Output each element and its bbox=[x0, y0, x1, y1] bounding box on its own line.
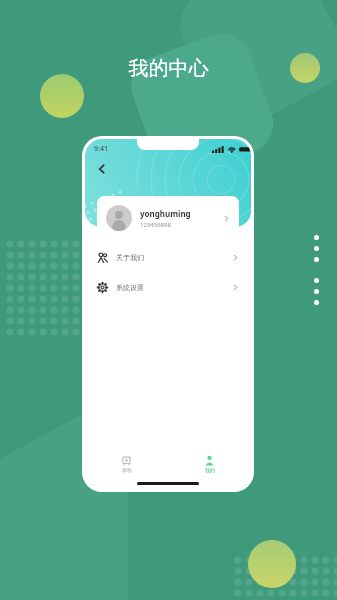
button[interactable]: 课程 bbox=[85, 453, 168, 475]
staticText: 我的中心 bbox=[0, 56, 337, 81]
button[interactable]: Back bbox=[93, 160, 111, 178]
staticText: 课程 bbox=[122, 467, 132, 473]
staticText: 我的 bbox=[205, 467, 215, 473]
button[interactable]: 关于我们 bbox=[85, 249, 251, 266]
button[interactable]: 我的 bbox=[168, 453, 251, 475]
button[interactable]: 系统设置 bbox=[85, 279, 251, 296]
staticText: 关于我们 bbox=[116, 253, 144, 262]
staticText: 9:41 bbox=[94, 144, 108, 154]
staticText: 系统设置 bbox=[116, 283, 144, 292]
button[interactable]: yonghuming bbox=[97, 196, 239, 240]
staticText: 123456898 bbox=[140, 221, 171, 229]
staticText: yonghuming bbox=[140, 208, 191, 219]
